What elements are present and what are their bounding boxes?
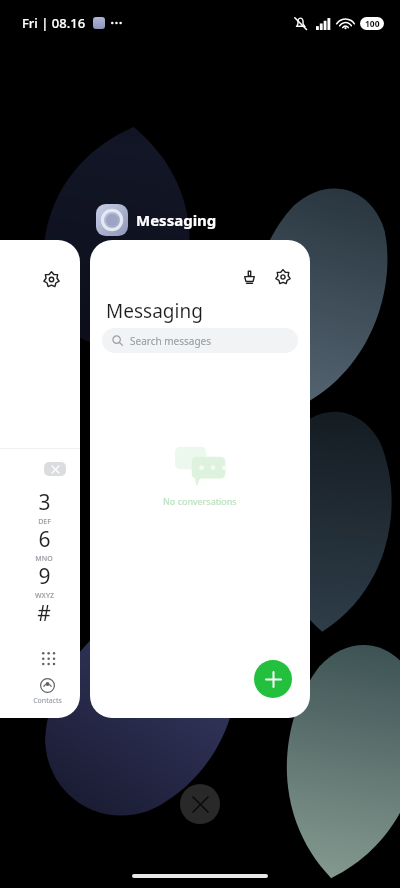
staticText: 100 <box>365 18 380 30</box>
button[interactable]: 3 <box>22 488 66 527</box>
button[interactable]: Theme <box>90 240 310 718</box>
staticText: Fri | 08.16 <box>22 14 86 32</box>
staticText: Messaging <box>136 210 217 230</box>
staticText: Contacts <box>33 696 62 706</box>
button[interactable]: Close all <box>180 784 220 824</box>
staticText: WXYZ <box>35 591 54 601</box>
button[interactable]: New conversation <box>254 660 292 698</box>
button[interactable]: # <box>22 599 66 628</box>
button[interactable]: 9 <box>22 562 66 601</box>
button[interactable]: Backspace <box>44 462 66 476</box>
button[interactable]: Settings <box>0 240 80 718</box>
button[interactable]: Keypad <box>34 644 64 674</box>
staticText: 3 <box>38 488 51 517</box>
staticText: 9 <box>38 562 51 591</box>
button[interactable]: 6 <box>22 525 66 564</box>
staticText: Messaging <box>106 298 203 324</box>
button[interactable]: Settings <box>38 266 64 292</box>
staticText: No conversations <box>163 495 237 507</box>
staticText: DEF <box>38 517 51 527</box>
staticText: # <box>37 599 51 628</box>
staticText: 6 <box>38 525 51 554</box>
button[interactable]: Search messages <box>102 328 298 353</box>
button[interactable]: Theme <box>236 264 262 290</box>
staticText: Search messages <box>130 334 212 348</box>
button[interactable]: Settings <box>270 264 296 290</box>
staticText: MNO <box>35 554 53 564</box>
button[interactable]: Contacts <box>23 678 71 706</box>
